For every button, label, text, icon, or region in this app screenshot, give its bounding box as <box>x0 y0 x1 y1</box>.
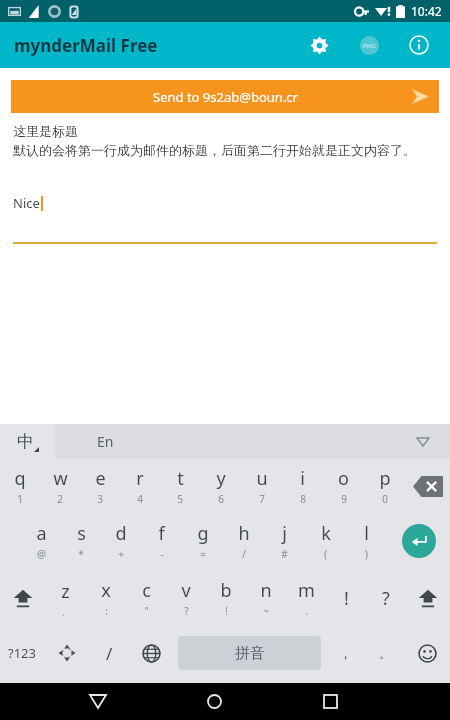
staticText: 。 <box>379 645 392 661</box>
button[interactable]: Move cursor <box>44 627 89 679</box>
staticText: mynderMail Free <box>14 34 158 57</box>
staticText: 4 <box>137 492 143 506</box>
button[interactable]: ?123 <box>0 627 44 679</box>
button[interactable]: z <box>45 569 86 627</box>
button[interactable]: r <box>120 459 160 512</box>
button[interactable]: y <box>200 459 241 512</box>
button[interactable]: p <box>364 459 405 512</box>
staticText: i <box>300 466 305 491</box>
button[interactable]: g <box>182 512 223 569</box>
staticText: ( <box>324 547 327 561</box>
staticText: * <box>78 547 84 561</box>
staticText: n <box>260 578 272 603</box>
staticText: a <box>36 521 47 546</box>
staticText: ? <box>184 604 189 618</box>
staticText: j <box>282 521 287 546</box>
staticText: 中 <box>17 431 34 452</box>
button[interactable]: Backspace <box>408 471 448 501</box>
staticText: x <box>101 578 111 603</box>
staticText: q <box>14 466 26 491</box>
button[interactable]: h <box>223 512 264 569</box>
button[interactable]: Settings <box>304 30 334 60</box>
button[interactable]: Change language <box>129 627 174 679</box>
button[interactable]: w <box>40 459 80 512</box>
staticText: 3 <box>97 492 103 506</box>
staticText: # <box>281 547 288 561</box>
button[interactable]: ! <box>326 569 366 627</box>
button[interactable]: Info <box>404 30 434 60</box>
staticText: 9 <box>341 492 347 506</box>
staticText: d <box>115 521 127 546</box>
button[interactable]: k <box>305 512 346 569</box>
staticText: + <box>118 547 124 561</box>
staticText: 6 <box>218 492 224 506</box>
button[interactable]: Chinese input <box>0 424 55 459</box>
button[interactable]: Enter <box>402 524 436 558</box>
button[interactable]: 。 <box>365 627 405 679</box>
staticText: s <box>77 521 86 546</box>
staticText: = <box>200 547 206 561</box>
staticText: m <box>298 578 315 603</box>
button[interactable]: 拼音 <box>178 636 321 670</box>
button[interactable]: a <box>21 512 61 569</box>
button[interactable]: u <box>241 459 282 512</box>
button[interactable]: Emoji <box>405 627 450 679</box>
staticText: r <box>136 466 144 491</box>
button[interactable]: e <box>80 459 120 512</box>
staticText: z <box>61 579 70 604</box>
staticText: h <box>238 521 250 546</box>
staticText: @ <box>37 547 46 561</box>
button[interactable]: Shift <box>406 569 450 627</box>
button[interactable]: l <box>346 512 387 569</box>
staticText: / <box>106 642 113 665</box>
button[interactable]: q <box>0 459 40 512</box>
staticText: 0 <box>382 492 388 506</box>
staticText: k <box>321 521 331 546</box>
button[interactable]: b <box>206 569 246 627</box>
button[interactable]: En <box>55 424 450 459</box>
button[interactable]: Recent apps <box>308 683 352 720</box>
staticText: - <box>160 547 164 561</box>
staticText: " <box>144 604 149 618</box>
button[interactable]: / <box>89 627 129 679</box>
staticText: : <box>105 604 108 618</box>
button[interactable]: ? <box>366 569 406 627</box>
button[interactable]: c <box>126 569 166 627</box>
button[interactable]: ， <box>325 627 365 679</box>
button[interactable]: Expand suggestions <box>412 431 434 453</box>
button[interactable]: f <box>141 512 182 569</box>
staticText: Nice <box>13 194 40 212</box>
staticText: / <box>242 547 246 561</box>
button[interactable]: o <box>323 459 364 512</box>
staticText: 拼音 <box>235 644 265 663</box>
staticText: ) <box>365 547 368 561</box>
button[interactable]: v <box>166 569 206 627</box>
staticText: 默认的会将第一行成为邮件的标题，后面第二行开始就是正文内容了。 <box>13 142 416 158</box>
button[interactable]: t <box>160 459 200 512</box>
staticText: e <box>95 466 106 491</box>
button[interactable]: Send to 9s2ab@boun.cr <box>11 80 439 113</box>
button[interactable]: s <box>61 512 101 569</box>
button[interactable]: d <box>101 512 141 569</box>
staticText: o <box>338 466 349 491</box>
staticText: l <box>364 521 369 546</box>
button[interactable]: Shift <box>0 569 45 627</box>
button[interactable]: i <box>282 459 323 512</box>
staticText: . <box>305 604 308 618</box>
staticText: v <box>181 578 191 603</box>
button[interactable]: j <box>264 512 305 569</box>
button[interactable]: Attachment type <box>354 30 384 60</box>
staticText: y <box>216 466 226 491</box>
button[interactable]: Home <box>192 683 236 720</box>
button[interactable]: n <box>246 569 286 627</box>
staticText: w <box>53 466 68 491</box>
button[interactable]: Back <box>76 683 120 720</box>
button[interactable]: x <box>86 569 126 627</box>
staticText: PNG <box>363 42 376 50</box>
staticText: ?123 <box>8 644 36 662</box>
staticText: ! <box>225 604 228 618</box>
staticText: g <box>197 521 209 546</box>
staticText: Send to 9s2ab@boun.cr <box>153 88 298 106</box>
button[interactable]: m <box>286 569 326 627</box>
staticText: 2 <box>57 492 63 506</box>
